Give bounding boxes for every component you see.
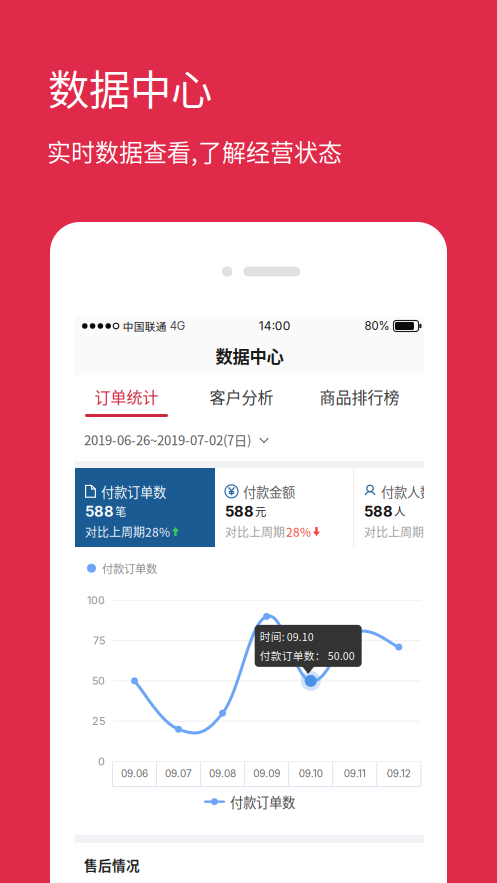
staticText: 付款订单数： 50.00 [260, 648, 355, 663]
staticText: 客户分析 [209, 385, 273, 408]
button[interactable]: 付款人数 [354, 468, 492, 547]
staticText: 数据中心 [215, 343, 283, 368]
staticText: 588 [225, 503, 254, 520]
staticText: 实时数据查看,了解经营状态 [47, 134, 342, 168]
staticText: 09.11 [344, 767, 366, 780]
staticText: 588 [364, 503, 393, 520]
button[interactable]: 2019-06-26~2019-07-02(7日) [75, 422, 424, 461]
staticText: 付款金额 [243, 482, 295, 501]
button[interactable]: 订单统计 [66, 375, 186, 421]
staticText: 50 [92, 674, 105, 687]
staticText: 28% [286, 523, 311, 540]
staticText: 09.10 [299, 767, 323, 780]
staticText: 25 [92, 715, 105, 728]
staticText: 时间: 09.10 [260, 629, 314, 644]
staticText: 4G [167, 319, 185, 333]
staticText: 商品排行榜 [319, 385, 399, 408]
staticText: 28% [425, 523, 450, 540]
staticText: 75 [93, 634, 105, 647]
staticText: 09.08 [209, 767, 236, 780]
staticText: 付款订单数 [101, 482, 166, 501]
staticText: 中国联通 [119, 318, 167, 334]
staticText: 100 [87, 594, 105, 607]
staticText: 订单统计 [94, 385, 158, 408]
staticText: 付款订单数 [102, 560, 157, 576]
staticText: 付款人数 [381, 482, 433, 501]
staticText: 数据中心 [48, 57, 212, 117]
staticText: 付款订单数 [230, 792, 295, 811]
staticText: 0 [98, 755, 105, 768]
staticText: 2019-06-26~2019-07-02(7日) [84, 430, 251, 449]
staticText: 售后情况 [84, 855, 140, 875]
button[interactable]: 商品排行榜 [299, 375, 419, 421]
staticText: 元 [255, 503, 266, 519]
staticText: 人 [394, 503, 405, 519]
staticText: 80% [364, 319, 389, 333]
button[interactable]: 客户分析 [181, 375, 301, 421]
staticText: 09.06 [121, 767, 148, 780]
staticText: 笔 [115, 503, 126, 519]
staticText: 09.09 [253, 767, 280, 780]
staticText: 588 [85, 503, 114, 520]
staticText: 09.12 [387, 767, 411, 780]
staticText: 对比上周期 [225, 523, 285, 540]
staticText: 14:00 [259, 319, 291, 333]
staticText: 对比上周期 [364, 523, 424, 540]
staticText: 对比上周期28% [85, 523, 170, 540]
staticText: 09.07 [165, 767, 192, 780]
button[interactable]: 付款金额 [215, 468, 353, 547]
button[interactable]: 付款订单数 [75, 468, 215, 547]
